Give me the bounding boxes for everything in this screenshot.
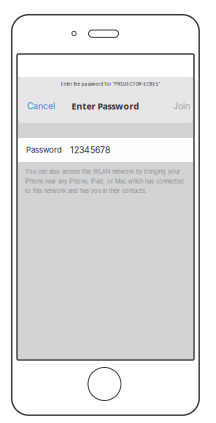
staticText: Cancel	[27, 101, 55, 111]
staticText: Enter the password for “PROJECTOR-EC8E5”	[60, 81, 160, 87]
staticText: You can also access this WLAN network by…	[25, 168, 184, 194]
staticText: 12345678	[70, 145, 110, 155]
staticText: Password	[26, 145, 62, 155]
button[interactable]: Cancel	[27, 94, 63, 118]
button[interactable]: Join	[154, 94, 190, 118]
staticText: Join	[173, 101, 190, 111]
staticText: Enter Password	[71, 100, 139, 112]
